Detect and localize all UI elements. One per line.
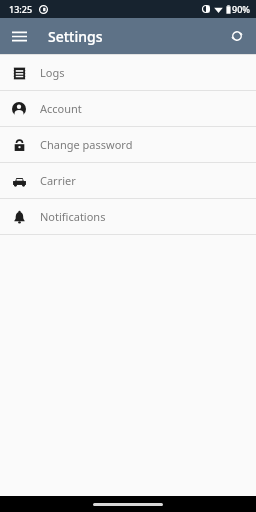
staticText: Account — [40, 101, 82, 116]
staticText: 13:25 — [9, 3, 33, 15]
button[interactable]: Open navigation menu — [5, 22, 33, 50]
button[interactable]: Notifications — [0, 199, 256, 234]
button[interactable]: Sync — [223, 22, 251, 50]
button[interactable]: Account — [0, 91, 256, 126]
staticText: Settings — [48, 27, 103, 46]
staticText: Carrier — [40, 173, 76, 188]
staticText: Logs — [40, 65, 65, 80]
button[interactable]: Change password — [0, 127, 256, 162]
button[interactable]: Carrier — [0, 163, 256, 198]
button[interactable]: Logs — [0, 55, 256, 90]
staticText: Notifications — [40, 209, 106, 224]
staticText: 90% — [232, 3, 250, 15]
staticText: Change password — [40, 137, 133, 152]
